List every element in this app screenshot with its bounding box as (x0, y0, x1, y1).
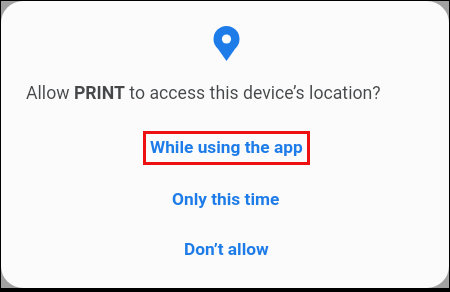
staticText: Don’t allow (184, 239, 269, 259)
staticText: Allow PRINT to access this device’s loca… (26, 83, 381, 104)
button[interactable]: While using the app (143, 131, 310, 165)
staticText: While using the app (150, 137, 303, 157)
button[interactable]: Don’t allow (166, 233, 286, 264)
staticText: Only this time (172, 189, 280, 209)
button[interactable]: Only this time (161, 183, 291, 214)
